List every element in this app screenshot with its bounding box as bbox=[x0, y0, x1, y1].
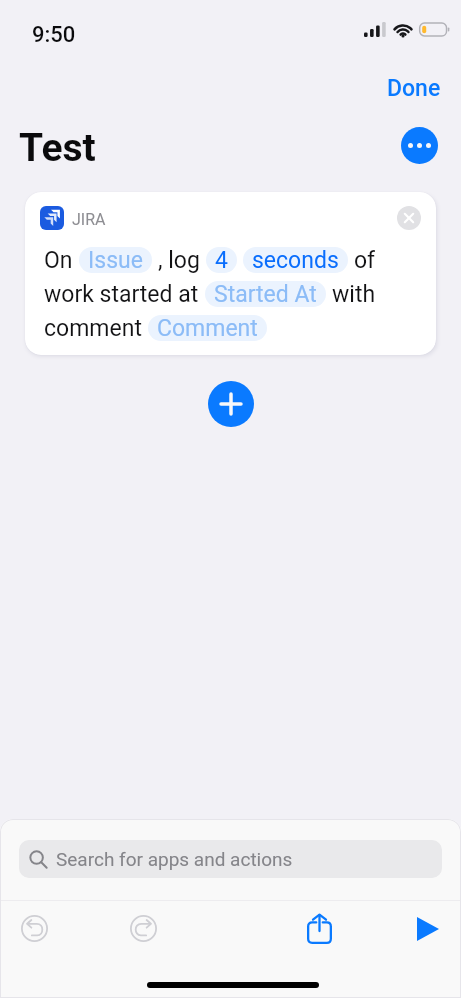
button[interactable]: Undo bbox=[14, 908, 55, 949]
staticText: of bbox=[354, 247, 376, 274]
button[interactable]: Share bbox=[299, 908, 340, 949]
staticText: seconds bbox=[252, 247, 339, 273]
staticText: Test bbox=[19, 125, 96, 171]
staticText: work started at bbox=[44, 281, 199, 308]
button[interactable]: Comment bbox=[148, 315, 267, 341]
button[interactable]: Redo bbox=[123, 908, 164, 949]
staticText: Comment bbox=[157, 315, 258, 341]
staticText: On bbox=[44, 247, 73, 274]
button[interactable]: Add action bbox=[208, 381, 254, 427]
staticText: with bbox=[332, 281, 376, 308]
button[interactable]: Issue bbox=[79, 247, 152, 273]
staticText: Issue bbox=[88, 247, 143, 273]
button[interactable]: Started At bbox=[205, 281, 326, 307]
staticText: 9:50 bbox=[32, 22, 76, 48]
staticText: 4 bbox=[215, 247, 228, 273]
staticText: , log bbox=[158, 247, 200, 274]
button[interactable]: Done bbox=[383, 72, 445, 105]
button[interactable]: More options bbox=[401, 127, 438, 164]
staticText: Search for apps and actions bbox=[56, 848, 293, 870]
button[interactable]: Run bbox=[407, 908, 448, 949]
button[interactable]: Remove action bbox=[397, 206, 421, 230]
staticText: Done bbox=[387, 75, 441, 102]
button[interactable]: Search for apps and actions bbox=[19, 840, 442, 878]
button[interactable]: 4 bbox=[206, 247, 237, 273]
staticText: JIRA bbox=[72, 210, 106, 229]
button[interactable]: JIRA bbox=[25, 192, 436, 355]
staticText: comment bbox=[44, 315, 142, 342]
staticText: Started At bbox=[214, 281, 317, 307]
button[interactable]: seconds bbox=[243, 247, 348, 273]
